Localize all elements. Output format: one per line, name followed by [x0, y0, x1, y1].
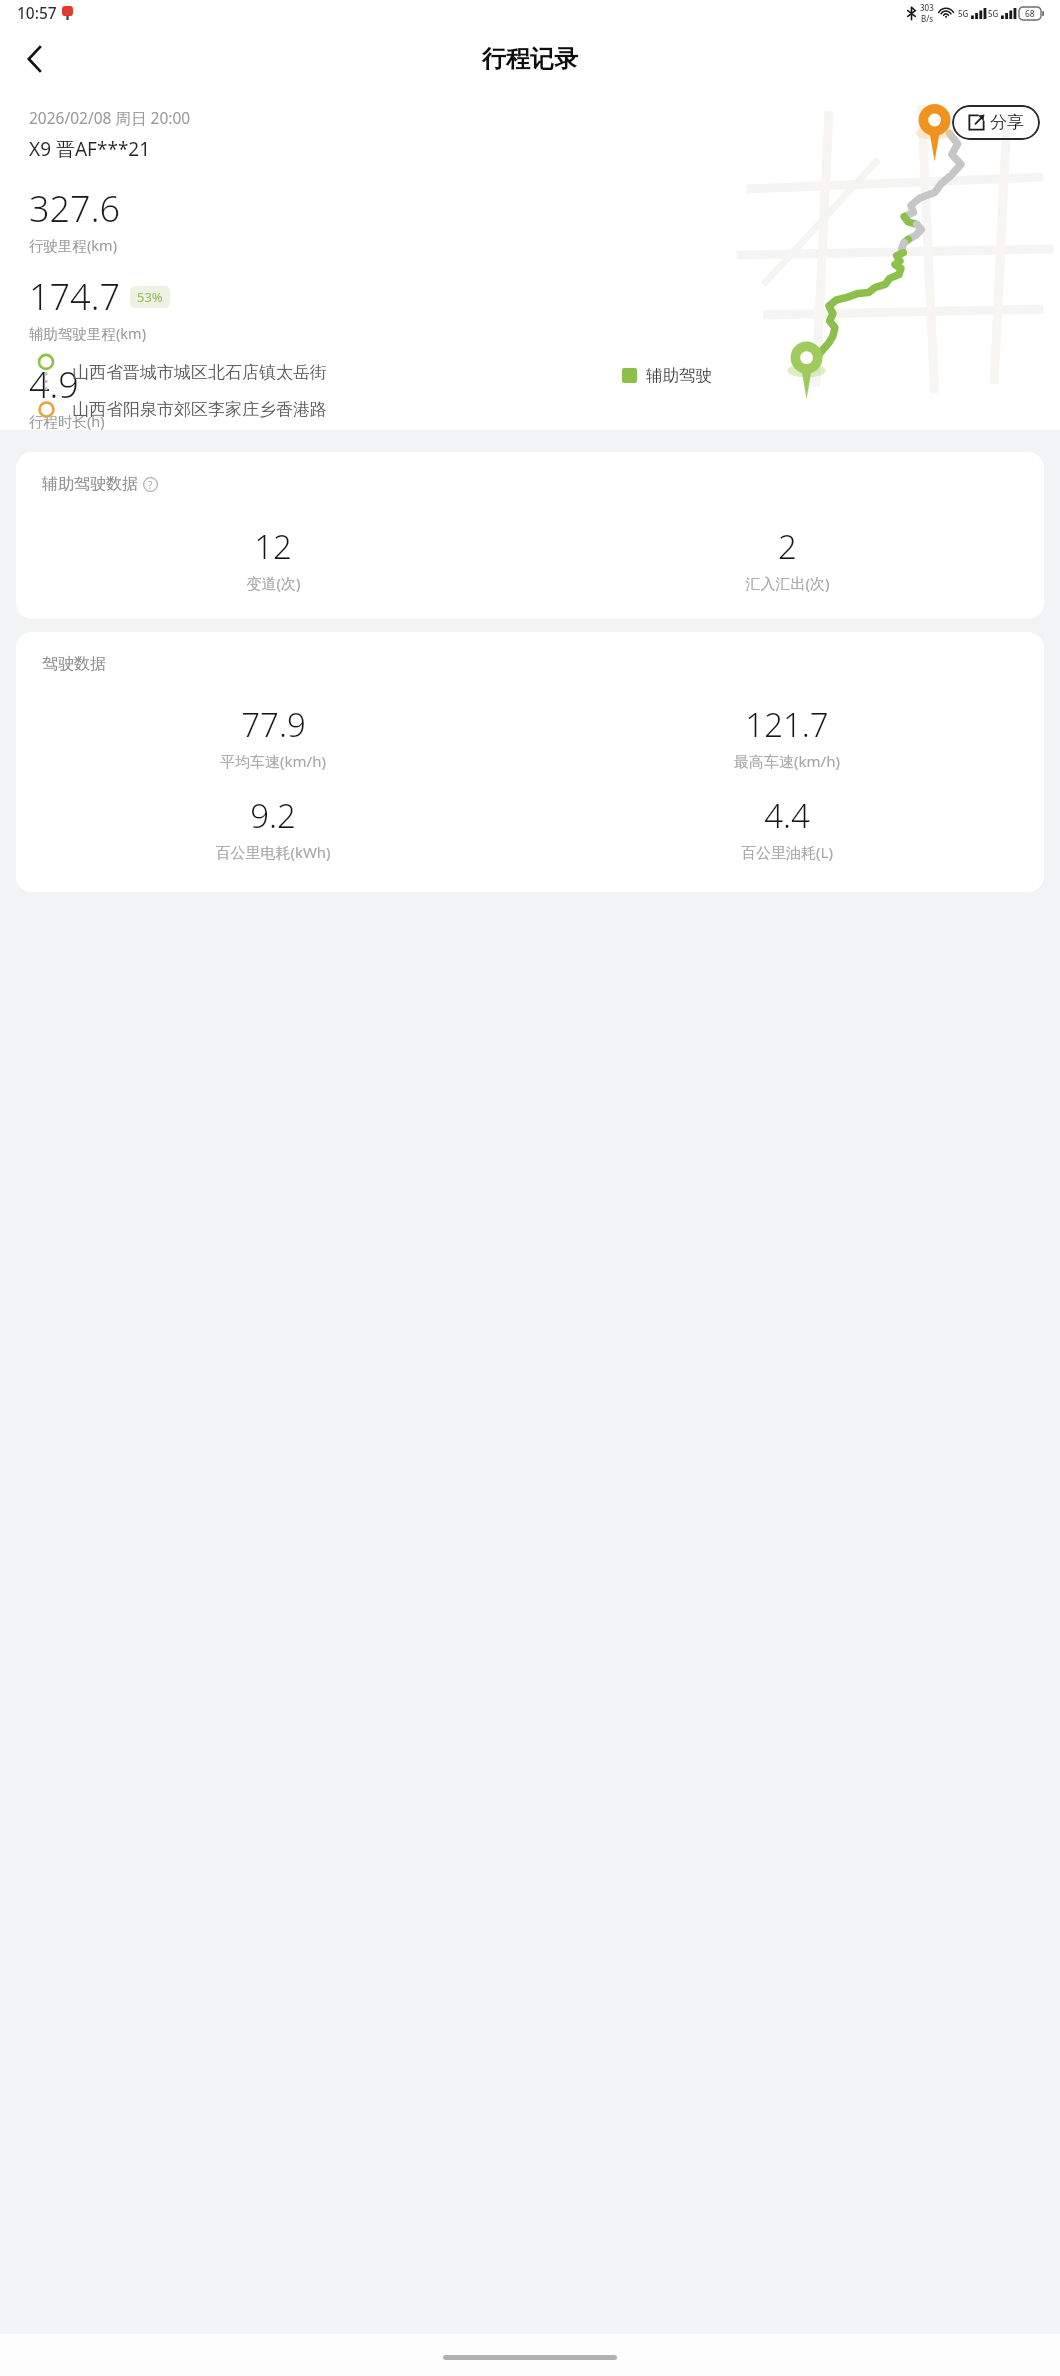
staticText: 辅助驾驶	[646, 365, 712, 386]
button[interactable]: 辅助驾驶数据	[16, 452, 1044, 619]
staticText: 平均车速(km/h)	[220, 751, 326, 771]
staticText: 53%	[137, 288, 163, 306]
button[interactable]: Back	[8, 33, 60, 85]
staticText: 68	[1025, 8, 1035, 20]
staticText: 汇入汇出(次)	[745, 573, 830, 593]
staticText: 变道(次)	[246, 573, 301, 593]
staticText: 百公里电耗(kWh)	[215, 842, 331, 862]
staticText: 2026/02/08 周日 20:00	[29, 107, 191, 128]
staticText: 10:57	[17, 2, 57, 23]
staticText: 5G	[958, 8, 969, 19]
staticText: 4.4	[764, 793, 810, 838]
staticText: 行程时长(h)	[29, 411, 105, 430]
staticText: 辅助驾驶里程(km)	[29, 323, 147, 343]
staticText: 12	[254, 524, 292, 569]
staticText: 121.7	[745, 702, 829, 747]
staticText: 174.7	[29, 272, 121, 321]
staticText: 327.6	[29, 184, 121, 233]
staticText: 4.9	[29, 360, 79, 409]
staticText: 77.9	[241, 702, 306, 747]
staticText: 303	[920, 2, 934, 13]
staticText: 2	[778, 524, 797, 569]
staticText: 山西省晋城市城区北石店镇太岳街	[72, 362, 327, 383]
staticText: 山西省阳泉市郊区李家庄乡香港路	[72, 399, 327, 420]
staticText: 9.2	[250, 793, 296, 838]
staticText: B/s	[921, 13, 934, 24]
staticText: 最高车速(km/h)	[734, 751, 840, 771]
staticText: 驾驶数据	[42, 654, 106, 674]
staticText: ?	[148, 478, 153, 492]
button[interactable]: 驾驶数据	[16, 632, 1044, 892]
staticText: 辅助驾驶数据	[42, 474, 138, 494]
staticText: 行程记录	[482, 44, 578, 74]
button[interactable]: 分享	[952, 105, 1040, 140]
staticText: 行驶里程(km)	[29, 235, 118, 255]
staticText: X9 晋AF***21	[29, 136, 151, 162]
staticText: 百公里油耗(L)	[741, 842, 833, 862]
staticText: 5G	[988, 8, 999, 19]
staticText: 分享	[990, 112, 1024, 133]
